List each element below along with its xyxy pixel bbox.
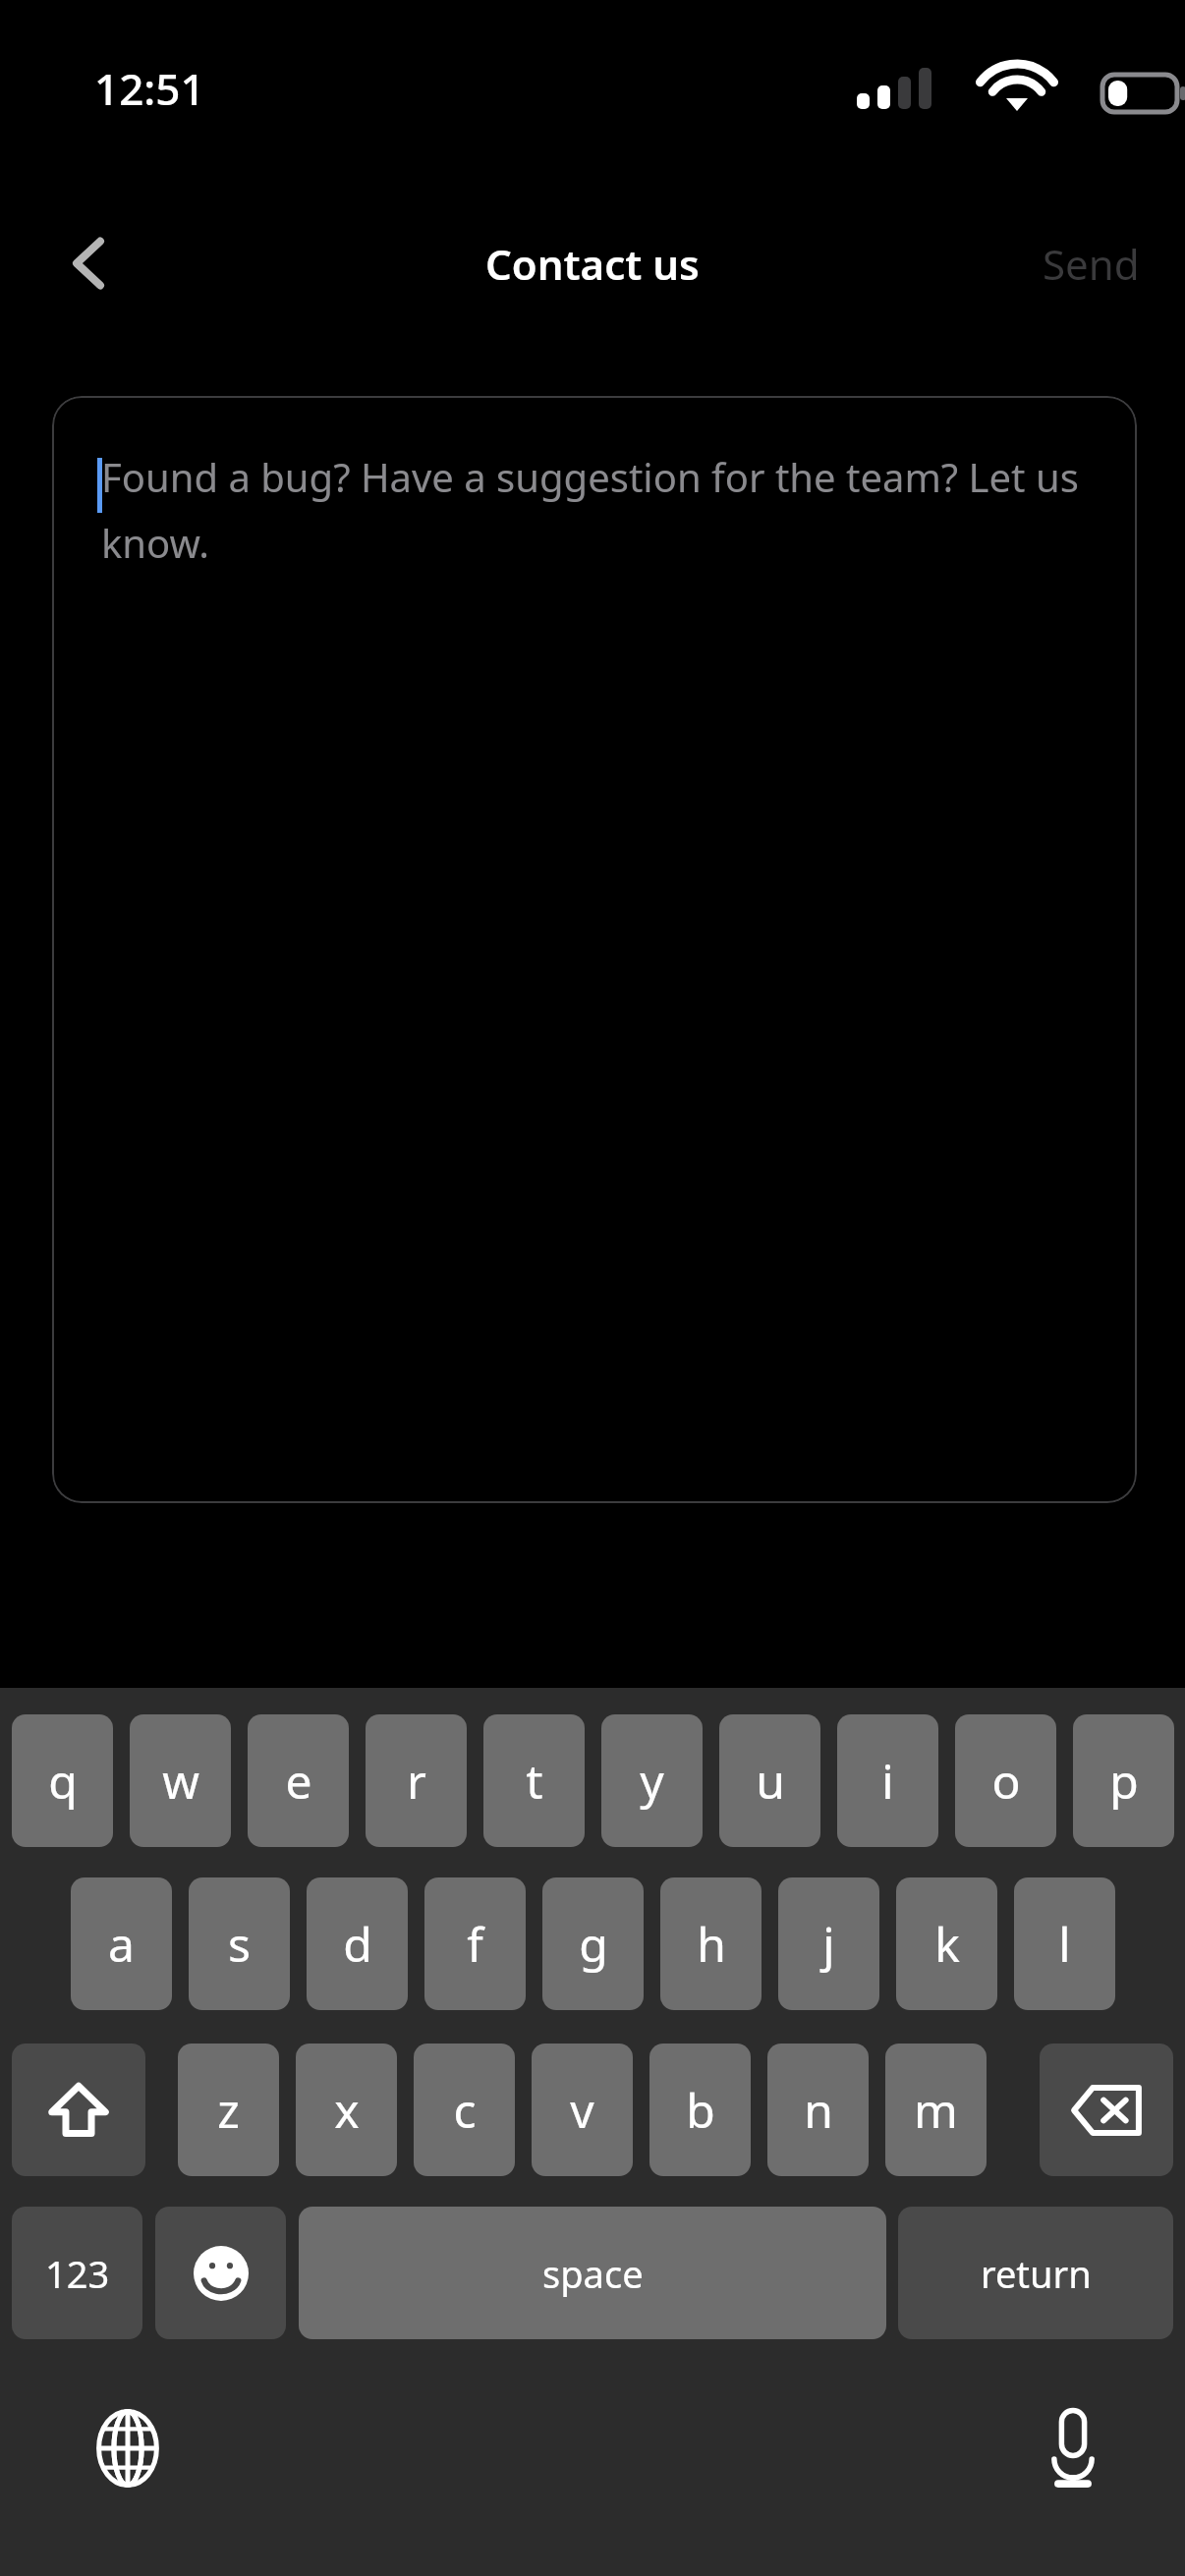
- staticText: return: [981, 2248, 1092, 2299]
- button[interactable]: 123: [12, 2207, 142, 2339]
- staticText: d: [343, 1912, 372, 1976]
- staticText: p: [1109, 1749, 1139, 1813]
- staticText: z: [217, 2078, 240, 2142]
- staticText: y: [640, 1749, 664, 1813]
- staticText: w: [162, 1749, 199, 1813]
- button[interactable]: z: [178, 2044, 279, 2176]
- staticText: Send: [1043, 236, 1140, 292]
- button[interactable]: space: [299, 2207, 886, 2339]
- staticText: Found a bug? Have a suggestion for the t…: [101, 450, 1094, 569]
- button[interactable]: j: [778, 1877, 879, 2010]
- button[interactable]: a: [71, 1877, 172, 2010]
- staticText: v: [570, 2078, 594, 2142]
- button[interactable]: g: [542, 1877, 644, 2010]
- staticText: s: [228, 1912, 251, 1976]
- button[interactable]: s: [189, 1877, 290, 2010]
- staticText: 123: [45, 2248, 110, 2299]
- button[interactable]: p: [1073, 1714, 1174, 1847]
- button[interactable]: o: [955, 1714, 1056, 1847]
- staticText: t: [526, 1749, 543, 1813]
- staticText: 12:51: [94, 59, 205, 118]
- button[interactable]: v: [532, 2044, 633, 2176]
- button[interactable]: b: [649, 2044, 751, 2176]
- button[interactable]: Back: [39, 214, 138, 312]
- button[interactable]: q: [12, 1714, 113, 1847]
- button[interactable]: Dictation: [1022, 2397, 1124, 2499]
- button[interactable]: f: [424, 1877, 526, 2010]
- staticText: space: [542, 2248, 644, 2299]
- button[interactable]: u: [719, 1714, 820, 1847]
- staticText: m: [914, 2078, 958, 2142]
- staticText: g: [579, 1912, 608, 1976]
- staticText: l: [1058, 1912, 1071, 1976]
- button[interactable]: Found a bug? Have a suggestion for the t…: [52, 396, 1137, 1503]
- button[interactable]: l: [1014, 1877, 1115, 2010]
- button[interactable]: y: [601, 1714, 703, 1847]
- staticText: i: [881, 1749, 894, 1813]
- staticText: q: [48, 1749, 78, 1813]
- staticText: n: [804, 2078, 833, 2142]
- staticText: j: [822, 1912, 835, 1976]
- button[interactable]: n: [767, 2044, 869, 2176]
- button[interactable]: Backspace: [1040, 2044, 1173, 2176]
- staticText: Contact us: [485, 236, 700, 292]
- staticText: f: [467, 1912, 483, 1976]
- button[interactable]: h: [660, 1877, 762, 2010]
- button[interactable]: k: [896, 1877, 997, 2010]
- staticText: a: [108, 1912, 135, 1976]
- button[interactable]: Send: [983, 224, 1140, 303]
- button[interactable]: e: [248, 1714, 349, 1847]
- staticText: b: [686, 2078, 715, 2142]
- button[interactable]: Shift: [12, 2044, 145, 2176]
- staticText: o: [991, 1749, 1021, 1813]
- staticText: h: [697, 1912, 726, 1976]
- button[interactable]: w: [130, 1714, 231, 1847]
- button[interactable]: t: [483, 1714, 585, 1847]
- button[interactable]: r: [366, 1714, 467, 1847]
- button[interactable]: Emoji: [155, 2207, 286, 2339]
- button[interactable]: c: [414, 2044, 515, 2176]
- staticText: r: [407, 1749, 426, 1813]
- button[interactable]: return: [898, 2207, 1173, 2339]
- staticText: e: [285, 1749, 312, 1813]
- button[interactable]: m: [885, 2044, 987, 2176]
- button[interactable]: d: [307, 1877, 408, 2010]
- staticText: k: [934, 1912, 960, 1976]
- staticText: x: [334, 2078, 360, 2142]
- button[interactable]: x: [296, 2044, 397, 2176]
- button[interactable]: Change keyboard language: [77, 2397, 179, 2499]
- staticText: u: [756, 1749, 785, 1813]
- button[interactable]: i: [837, 1714, 938, 1847]
- staticText: c: [453, 2078, 477, 2142]
